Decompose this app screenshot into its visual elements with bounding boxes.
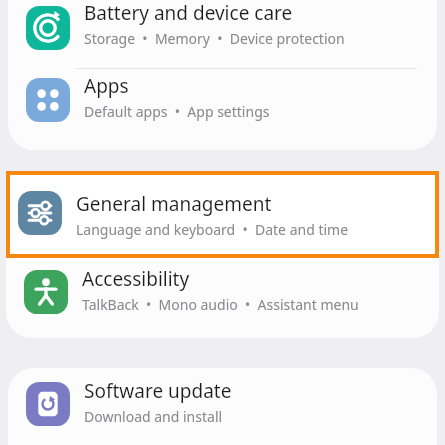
staticText: Download and install — [84, 407, 223, 426]
button[interactable]: Apps — [8, 69, 437, 141]
other: Apps — [26, 78, 70, 122]
other: General management — [18, 191, 62, 235]
other: Battery and device care — [26, 6, 70, 50]
staticText: TalkBack • Mono audio • Assistant menu — [82, 295, 359, 314]
staticText: General management — [76, 191, 272, 217]
staticText: Language and keyboard • Date and time — [76, 220, 349, 239]
button[interactable]: Battery and device care — [8, 0, 437, 68]
staticText: Accessibility — [82, 266, 190, 292]
staticText: Software update — [84, 378, 232, 404]
button[interactable]: Accessibility — [6, 258, 439, 338]
other: Software update — [26, 382, 70, 426]
staticText: Apps — [84, 73, 129, 99]
staticText: Storage • Memory • Device protection — [84, 29, 345, 48]
staticText: Battery and device care — [84, 0, 293, 26]
button[interactable]: Software update — [8, 368, 437, 445]
staticText: Default apps • App settings — [84, 102, 270, 121]
button[interactable]: General management — [6, 171, 439, 258]
other: Accessibility — [24, 270, 68, 314]
